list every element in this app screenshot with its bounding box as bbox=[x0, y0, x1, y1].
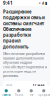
button[interactable]: Профиль bbox=[37, 86, 50, 100]
staticText: Расширение поддержки семьи системы смягч… bbox=[3, 9, 45, 50]
staticText: Активен bbox=[30, 91, 44, 95]
staticText: Статус bbox=[5, 91, 14, 95]
staticText: Профиль bbox=[38, 93, 50, 97]
button[interactable]: Чат bbox=[25, 86, 37, 100]
staticText: 9:41 bbox=[3, 0, 13, 6]
staticText: Дата bbox=[5, 83, 12, 87]
button[interactable]: Поиск bbox=[12, 86, 25, 100]
staticText: • ıl ▮ bbox=[39, 0, 47, 6]
staticText: Главная bbox=[2, 93, 10, 97]
staticText: Поиск bbox=[15, 93, 23, 97]
staticText: 12 мая bbox=[32, 83, 44, 87]
staticText: Чат bbox=[29, 93, 33, 97]
staticText: Обеспечение разработки правил дополнител… bbox=[3, 52, 47, 78]
button[interactable]: Главная bbox=[0, 86, 12, 100]
